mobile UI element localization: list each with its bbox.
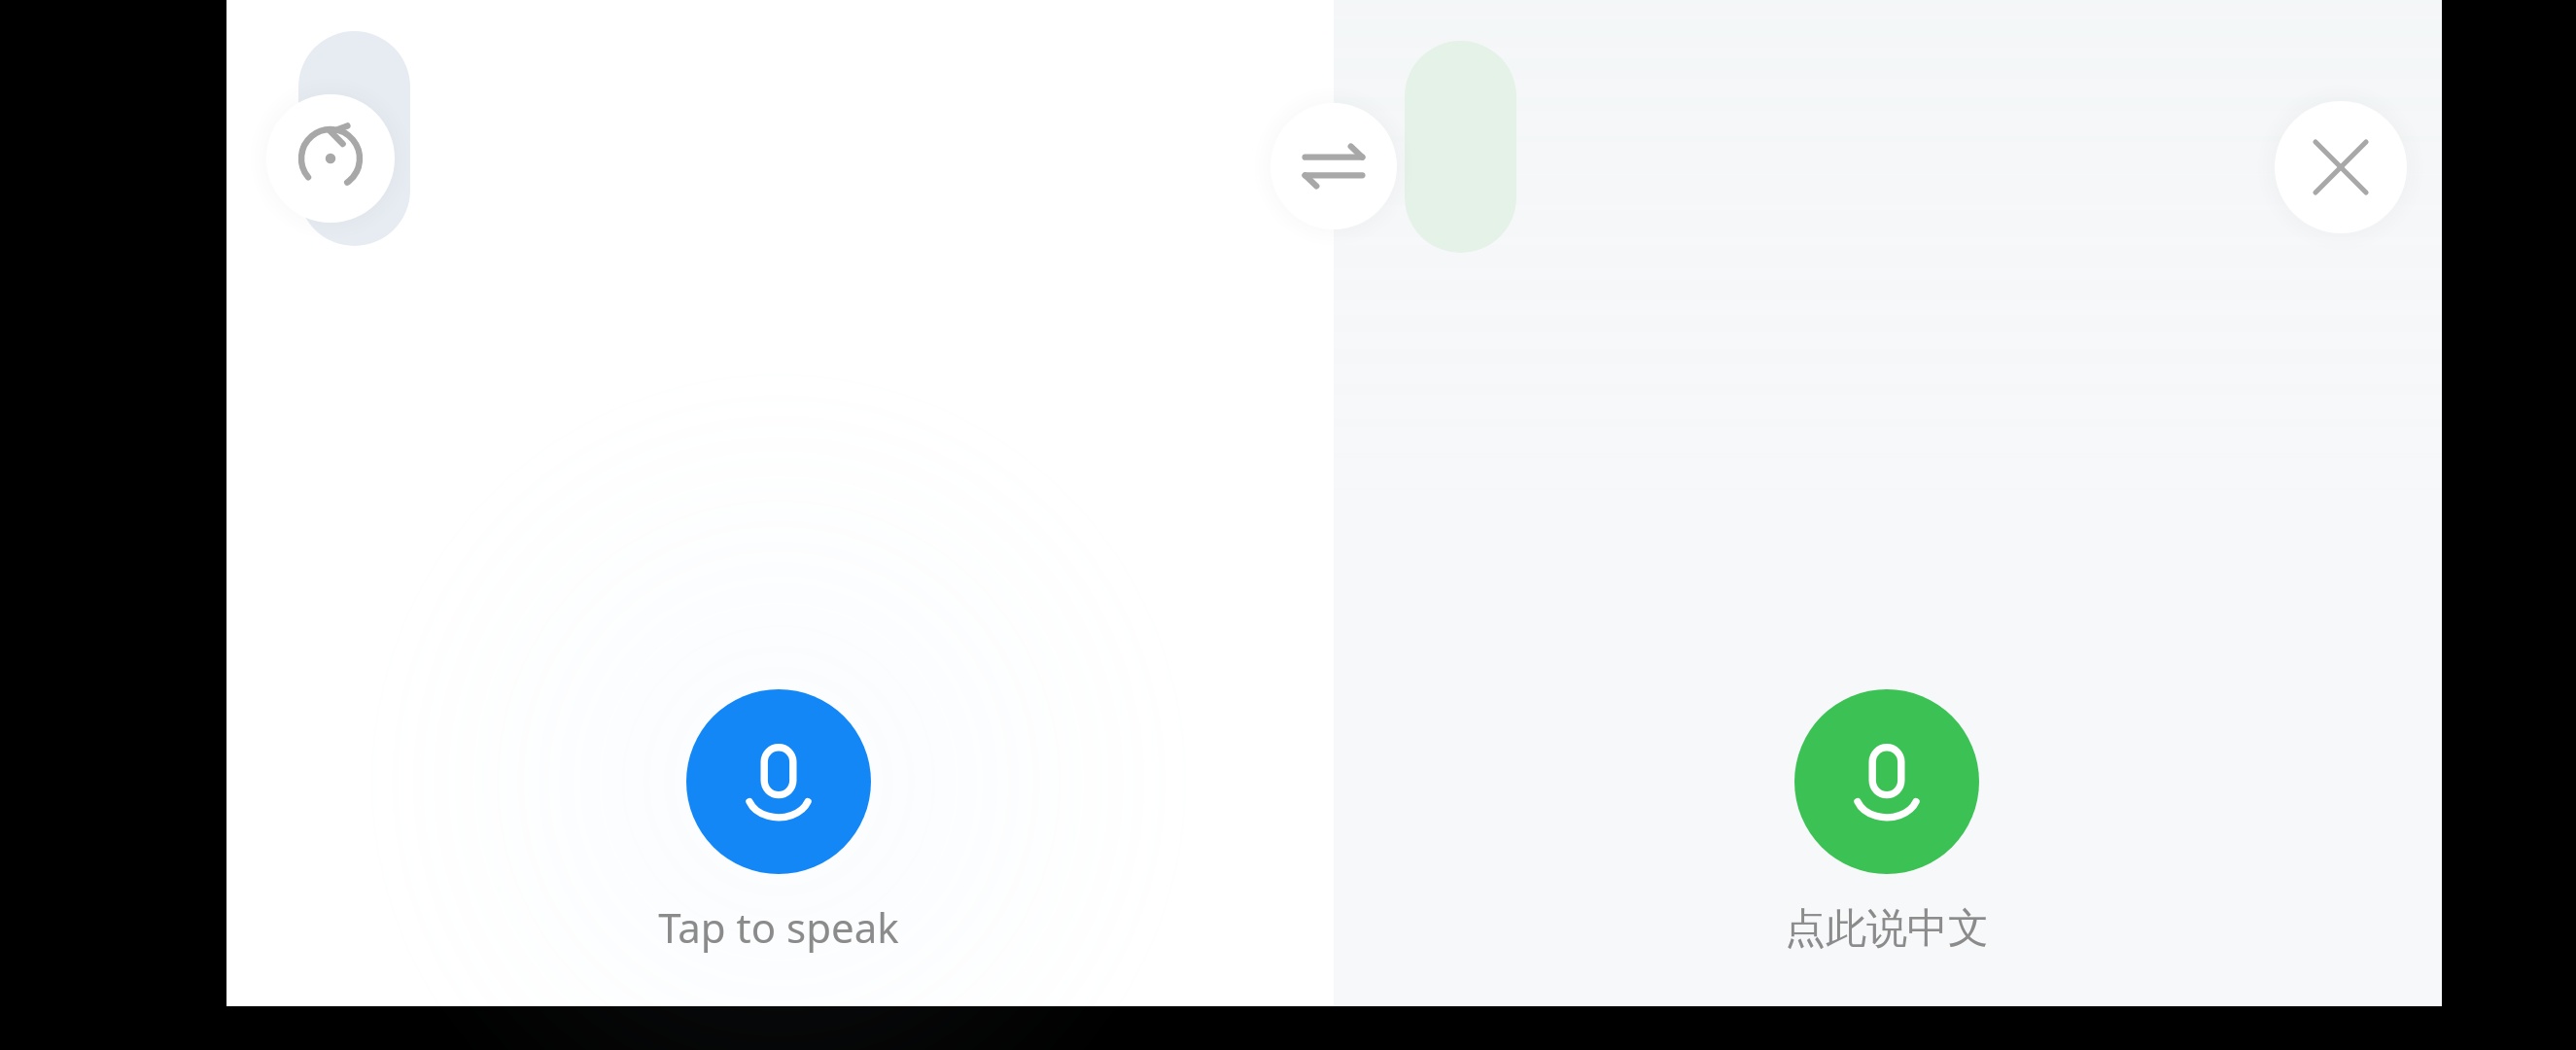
staticText: 点此说中文 xyxy=(1785,903,1989,955)
button[interactable]: 点此说中文 xyxy=(1779,899,1995,958)
button[interactable]: Tap to speak English xyxy=(686,689,871,874)
button[interactable]: Conversation history xyxy=(266,94,395,223)
button[interactable]: 点此说中文 xyxy=(1794,689,1979,874)
button[interactable]: Close xyxy=(2275,101,2407,233)
button[interactable]: Tap to speak English xyxy=(598,899,959,958)
staticText: Tap to speak English xyxy=(598,899,959,958)
button[interactable]: Swap languages xyxy=(1271,103,1397,229)
